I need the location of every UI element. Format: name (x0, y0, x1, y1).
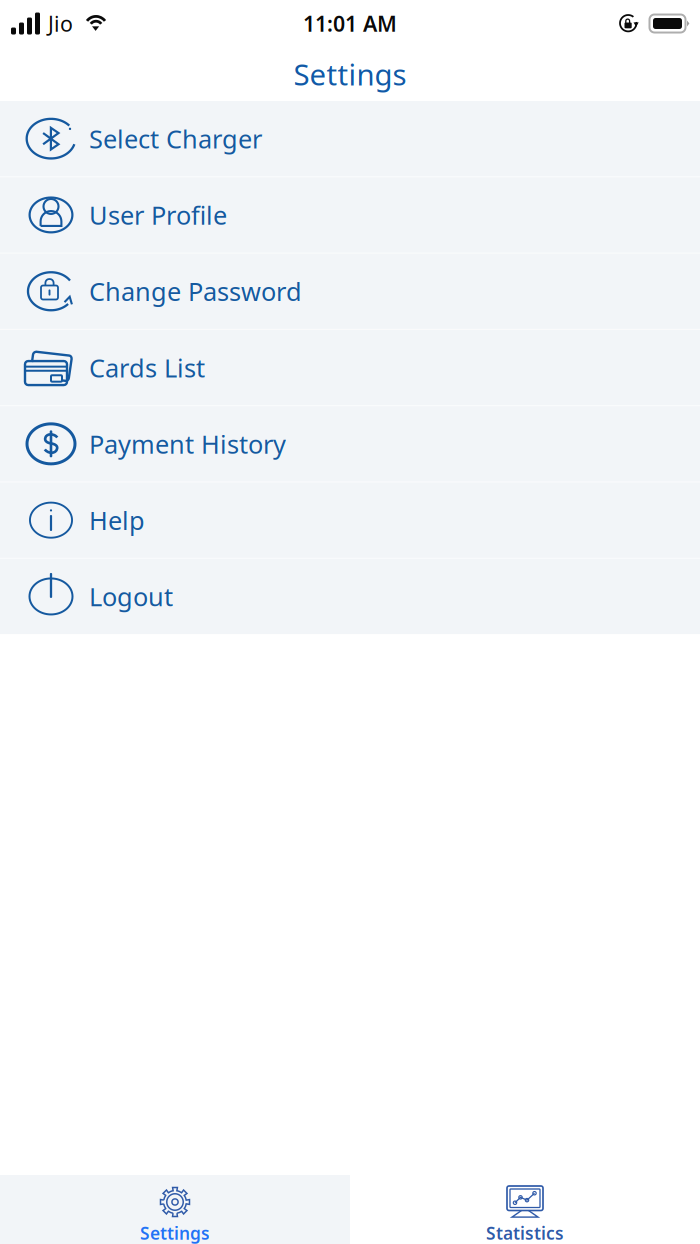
button[interactable]: Select Charger (0, 101, 700, 177)
staticText: Settings (140, 1221, 210, 1244)
button[interactable]: Cards List (0, 330, 700, 406)
button[interactable]: Statistics (350, 1175, 700, 1244)
staticText: Settings (293, 54, 406, 93)
button[interactable]: Logout (0, 559, 700, 634)
button[interactable]: Payment History (0, 406, 700, 482)
staticText: Jio (48, 9, 73, 38)
button[interactable]: Change Password (0, 254, 700, 330)
staticText: 11:01 AM (303, 9, 397, 38)
staticText: User Profile (89, 198, 227, 232)
staticText: Select Charger (89, 122, 262, 155)
button[interactable]: User Profile (0, 177, 700, 254)
staticText: Logout (89, 580, 173, 613)
staticText: Payment History (89, 427, 286, 461)
staticText: Statistics (486, 1221, 564, 1244)
button[interactable]: Help (0, 482, 700, 559)
button[interactable]: Settings (0, 1175, 350, 1244)
staticText: Cards List (89, 351, 205, 384)
staticText: Help (89, 503, 145, 537)
staticText: Change Password (89, 274, 302, 308)
